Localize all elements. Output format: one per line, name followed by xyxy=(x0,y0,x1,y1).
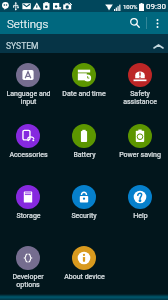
button[interactable]: Security xyxy=(56,175,112,236)
button[interactable]: More options xyxy=(147,12,168,34)
staticText: About device xyxy=(64,273,105,281)
button[interactable]: Safety assistance xyxy=(112,53,168,114)
staticText: SYSTEM xyxy=(6,41,39,51)
staticText: Security xyxy=(71,212,97,220)
staticText: Developer options xyxy=(12,273,44,289)
button[interactable]: Power saving xyxy=(112,114,168,175)
staticText: Date and time xyxy=(62,90,106,98)
staticText: Language and input xyxy=(6,90,51,106)
button[interactable]: QUICK SETTINGS xyxy=(0,34,168,53)
button[interactable]: Developer options xyxy=(0,236,56,297)
button[interactable]: Battery xyxy=(56,114,112,175)
button[interactable]: About device xyxy=(56,236,112,297)
button[interactable]: Search xyxy=(124,12,146,34)
staticText: Storage xyxy=(16,212,41,220)
button[interactable]: Help xyxy=(112,175,168,236)
staticText: Power saving xyxy=(119,151,161,159)
button[interactable]: Language and input xyxy=(0,53,56,114)
staticText: 100% xyxy=(123,3,138,10)
button[interactable]: Date and time xyxy=(56,53,112,114)
staticText: Help xyxy=(133,212,148,220)
staticText: Accessories xyxy=(9,151,48,159)
button[interactable]: Storage xyxy=(0,175,56,236)
staticText: Battery xyxy=(73,151,96,159)
staticText: 09:30 xyxy=(146,2,166,11)
staticText: Settings xyxy=(7,17,49,30)
button[interactable]: Accessories xyxy=(0,114,56,175)
staticText: Safety assistance xyxy=(123,90,157,106)
